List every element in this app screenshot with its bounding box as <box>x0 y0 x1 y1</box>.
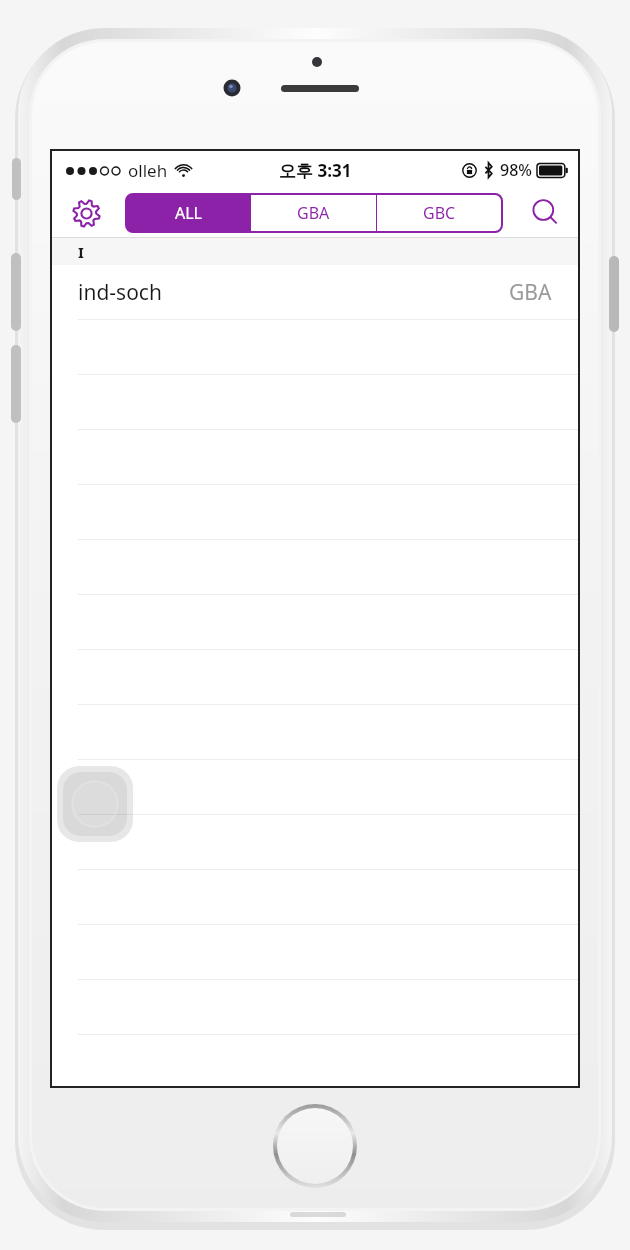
staticText: ALL <box>175 202 202 224</box>
button[interactable]: ind-soch <box>52 265 578 320</box>
staticText: ind-soch <box>78 278 162 307</box>
staticText: GBA <box>297 202 330 224</box>
staticText: 98% <box>500 159 532 181</box>
staticText: I <box>78 242 84 262</box>
staticText: GBC <box>423 202 456 224</box>
button[interactable]: Settings <box>64 191 108 235</box>
button[interactable]: ALL <box>126 194 250 232</box>
button[interactable]: GBA <box>251 194 376 232</box>
staticText: GBA <box>509 278 552 307</box>
button[interactable]: AssistiveTouch <box>57 766 133 842</box>
button[interactable]: Search <box>524 191 568 235</box>
staticText: olleh <box>128 159 168 182</box>
button[interactable]: GBC <box>377 194 502 232</box>
staticText: 오후 3:31 <box>279 159 352 182</box>
